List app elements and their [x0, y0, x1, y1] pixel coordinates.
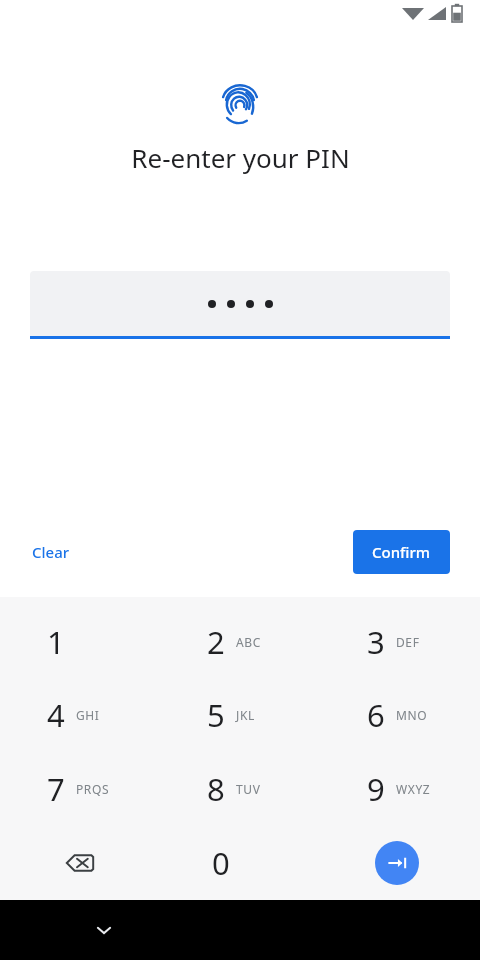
button[interactable]: Clear [18, 534, 84, 570]
button[interactable]: Hide keyboard [84, 910, 124, 950]
staticText: Confirm [372, 542, 431, 562]
button[interactable]: 4 [0, 678, 160, 752]
button[interactable]: Enter [320, 826, 480, 900]
button[interactable]: 9 [320, 752, 480, 826]
button[interactable]: 3 [320, 605, 480, 678]
button[interactable]: 5 [160, 678, 320, 752]
staticText: 1 [47, 621, 65, 663]
button[interactable]: 0 [160, 826, 320, 900]
staticText: 5 [207, 694, 225, 736]
button[interactable]: 2 [160, 605, 320, 678]
staticText: 9 [367, 768, 385, 810]
staticText: 4 [47, 694, 65, 736]
button[interactable]: 7 [0, 752, 160, 826]
staticText: GHI [76, 707, 100, 723]
staticText: DEF [396, 634, 420, 650]
button[interactable]: Confirm [353, 530, 450, 574]
staticText: MNO [396, 707, 428, 723]
button[interactable]: 6 [320, 678, 480, 752]
button[interactable]: 8 [160, 752, 320, 826]
staticText: 3 [367, 621, 385, 663]
staticText: 7 [47, 768, 65, 810]
staticText: 2 [207, 621, 225, 663]
staticText: PRQS [76, 781, 110, 797]
staticText: ABC [236, 634, 261, 650]
staticText: TUV [236, 781, 261, 797]
staticText: Re-enter your PIN [131, 140, 350, 175]
staticText: 6 [367, 694, 385, 736]
staticText: JKL [236, 707, 255, 723]
button[interactable]: 1 [0, 605, 160, 678]
button[interactable]: Backspace [0, 826, 160, 900]
staticText: 8 [207, 768, 225, 810]
button[interactable] [30, 271, 450, 339]
staticText: Clear [32, 542, 70, 562]
staticText: WXYZ [396, 781, 431, 797]
staticText: 0 [212, 842, 230, 884]
